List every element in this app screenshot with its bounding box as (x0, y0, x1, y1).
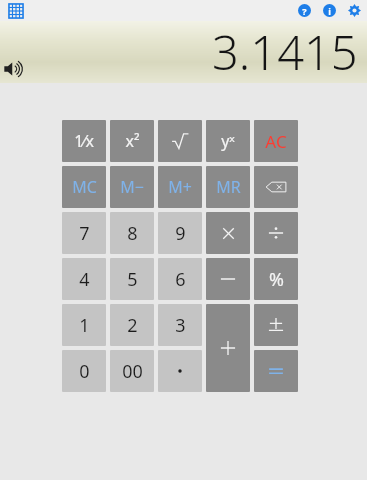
staticText: 0 (79, 359, 90, 384)
staticText: yˣ (221, 130, 235, 152)
staticText: 9 (175, 221, 186, 246)
staticText: 00 (122, 359, 143, 384)
button[interactable]: 4 (62, 258, 106, 300)
button[interactable] (254, 304, 298, 346)
staticText: 2 (127, 313, 138, 338)
staticText: x² (125, 130, 140, 152)
button[interactable]: Info (323, 4, 336, 17)
button[interactable] (254, 350, 298, 392)
staticText: 6 (175, 267, 186, 292)
button[interactable] (206, 258, 250, 300)
button[interactable]: Help (298, 4, 311, 17)
button[interactable]: x² (110, 120, 154, 162)
button[interactable]: Sound (3, 58, 25, 80)
button[interactable] (206, 212, 250, 254)
button[interactable]: 1 (62, 304, 106, 346)
button[interactable] (254, 212, 298, 254)
button[interactable]: Calculator (8, 3, 24, 19)
button[interactable]: Settings (348, 4, 361, 17)
button[interactable]: MR (206, 166, 250, 208)
staticText: 1⁄x (74, 130, 94, 152)
button[interactable]: 9 (158, 212, 202, 254)
staticText: i (328, 5, 331, 17)
button[interactable]: 8 (110, 212, 154, 254)
button[interactable] (158, 120, 202, 162)
button[interactable]: AC (254, 120, 298, 162)
button[interactable] (206, 304, 250, 392)
staticText: 1 (79, 313, 90, 338)
staticText: M− (120, 176, 144, 198)
staticText: 8 (127, 221, 138, 246)
staticText: 7 (79, 221, 90, 246)
button[interactable]: 2 (110, 304, 154, 346)
button[interactable]: 7 (62, 212, 106, 254)
button[interactable]: 5 (110, 258, 154, 300)
staticText: % (269, 267, 284, 292)
button[interactable]: % (254, 258, 298, 300)
button[interactable]: 1⁄x (62, 120, 106, 162)
button[interactable]: MC (62, 166, 106, 208)
button[interactable]: 00 (110, 350, 154, 392)
button[interactable]: yˣ (206, 120, 250, 162)
staticText: 4 (79, 267, 90, 292)
staticText: 5 (127, 267, 138, 292)
button[interactable]: 0 (62, 350, 106, 392)
staticText: 3 (175, 313, 186, 338)
staticText: 3.1415 (212, 20, 358, 82)
button[interactable] (158, 350, 202, 392)
button[interactable]: 6 (158, 258, 202, 300)
button[interactable]: Backspace (254, 166, 298, 208)
staticText: MR (216, 176, 241, 198)
staticText: AC (265, 130, 287, 153)
button[interactable]: 3 (158, 304, 202, 346)
staticText: ? (302, 5, 307, 17)
staticText: MC (72, 176, 97, 198)
button[interactable]: M+ (158, 166, 202, 208)
button[interactable]: M− (110, 166, 154, 208)
staticText: M+ (168, 176, 192, 198)
